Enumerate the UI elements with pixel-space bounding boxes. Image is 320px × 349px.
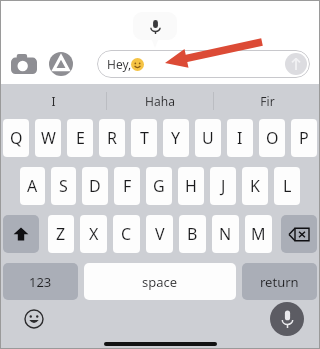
button[interactable]: Dictation [270, 302, 304, 336]
staticText: N [219, 223, 232, 245]
button[interactable]: E [67, 119, 93, 157]
staticText: S [59, 175, 68, 197]
staticText: Y [171, 127, 181, 149]
staticText: Hey, [107, 56, 132, 72]
staticText: Z [56, 223, 66, 245]
button[interactable]: C [113, 215, 140, 253]
staticText: M [251, 223, 266, 245]
staticText: space [142, 273, 178, 291]
button[interactable]: 123 [3, 263, 78, 300]
button[interactable]: Fir [214, 84, 320, 118]
button[interactable]: Y [163, 119, 189, 157]
staticText: T [140, 127, 149, 149]
button[interactable]: Q [3, 119, 29, 157]
staticText: I [51, 93, 56, 109]
button[interactable]: U [195, 119, 221, 157]
button[interactable]: O [259, 119, 285, 157]
staticText: return [260, 273, 299, 291]
staticText: P [299, 127, 309, 149]
button[interactable]: J [210, 167, 236, 205]
button[interactable]: V [146, 215, 173, 253]
staticText: Haha [145, 93, 175, 109]
button[interactable]: P [291, 119, 317, 157]
button[interactable]: H [178, 167, 204, 205]
button[interactable]: Shift [3, 215, 39, 253]
button[interactable]: space [84, 263, 236, 300]
button[interactable]: G [146, 167, 172, 205]
button[interactable]: Hey, [97, 50, 310, 78]
button[interactable]: I [0, 84, 106, 118]
button[interactable]: D [82, 167, 108, 205]
staticText: C [121, 223, 132, 245]
button[interactable]: return [242, 263, 317, 300]
button[interactable]: N [212, 215, 239, 253]
staticText: Q [10, 127, 23, 149]
staticText: J [221, 175, 226, 197]
button[interactable]: T [131, 119, 157, 157]
staticText: X [89, 223, 99, 245]
staticText: B [187, 223, 198, 245]
staticText: D [89, 175, 101, 197]
button[interactable]: R [99, 119, 125, 157]
staticText: L [283, 175, 292, 197]
button[interactable]: Haha [107, 84, 213, 118]
button[interactable]: L [274, 167, 300, 205]
button[interactable]: W [35, 119, 61, 157]
button[interactable]: F [114, 167, 140, 205]
staticText: F [123, 175, 132, 197]
button[interactable]: M [245, 215, 272, 253]
button[interactable]: A [20, 167, 45, 205]
button[interactable]: Backspace [281, 215, 317, 253]
staticText: V [155, 223, 165, 245]
staticText: E [76, 127, 85, 149]
button[interactable]: K [242, 167, 268, 205]
button[interactable]: App Store [48, 51, 74, 77]
staticText: A [27, 175, 38, 197]
staticText: K [250, 175, 260, 197]
staticText: W [41, 127, 56, 149]
staticText: Fir [260, 93, 275, 109]
button[interactable]: X [80, 215, 107, 253]
staticText: R [107, 127, 117, 149]
button[interactable]: B [179, 215, 206, 253]
button[interactable]: I [227, 119, 253, 157]
staticText: O [266, 127, 279, 149]
staticText: 123 [29, 273, 52, 291]
staticText: I [237, 127, 243, 149]
button[interactable]: S [51, 167, 76, 205]
staticText: G [153, 175, 165, 197]
button[interactable]: Z [48, 215, 74, 253]
staticText: U [202, 127, 214, 149]
button[interactable]: Emoji [23, 308, 45, 330]
button[interactable]: Send [285, 53, 307, 75]
staticText: H [185, 175, 197, 197]
button[interactable]: Camera [10, 52, 38, 76]
